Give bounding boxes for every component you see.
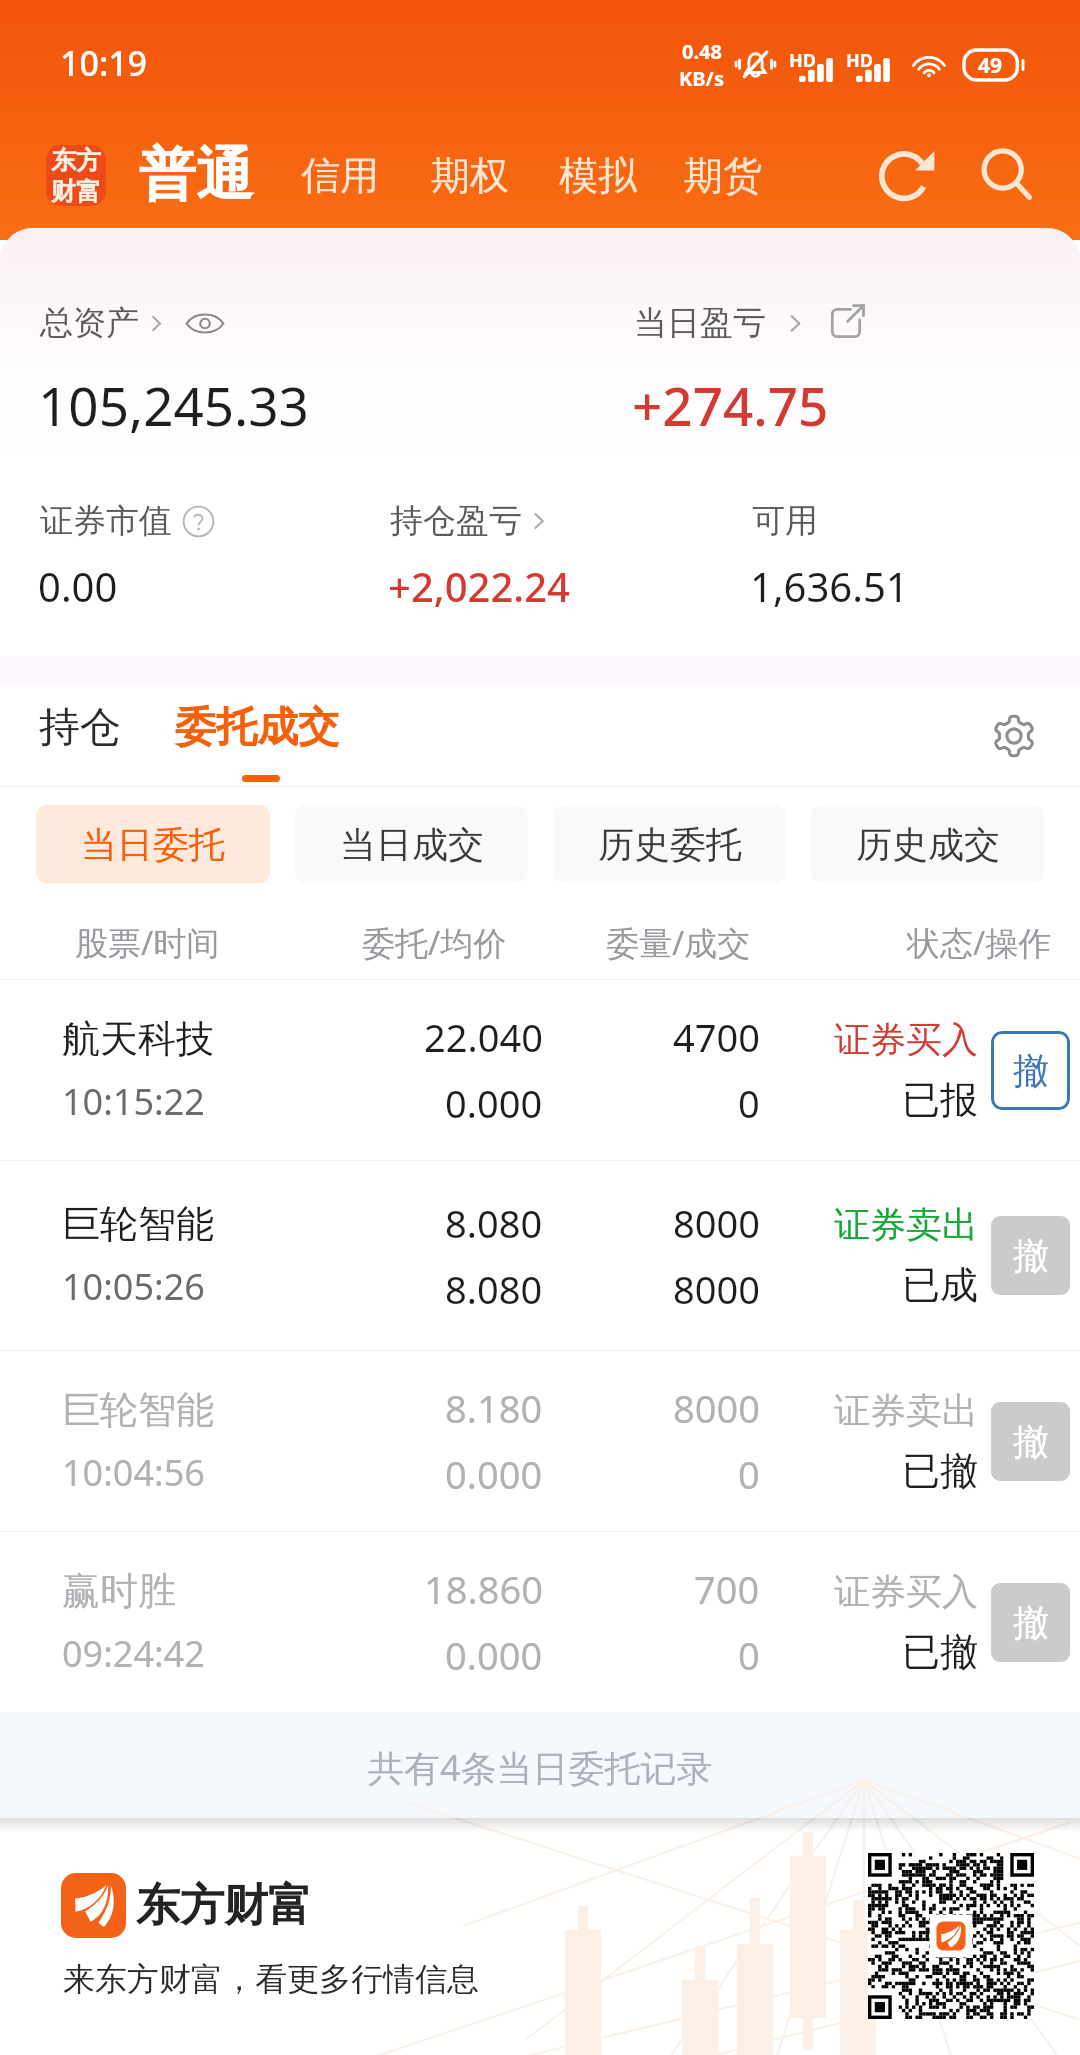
staticText: 10:19 bbox=[60, 40, 148, 86]
staticText: HD bbox=[846, 48, 873, 73]
button[interactable]: 期权 bbox=[431, 151, 509, 200]
staticText: 4700 bbox=[673, 1011, 760, 1063]
staticText: 证券卖出 bbox=[834, 1202, 978, 1247]
staticText: 已撤 bbox=[902, 1447, 978, 1495]
button[interactable]: 模拟 bbox=[559, 151, 637, 200]
staticText: 历史成交 bbox=[856, 822, 1000, 867]
staticText: 委托成交 bbox=[175, 702, 339, 754]
staticText: 撤 bbox=[1013, 1419, 1049, 1464]
button[interactable]: 持仓 bbox=[39, 702, 121, 754]
button[interactable]: 信用 bbox=[301, 151, 379, 200]
staticText: 8000 bbox=[673, 1197, 760, 1249]
button[interactable]: 巨轮智能 bbox=[0, 1161, 1080, 1350]
staticText: 已报 bbox=[902, 1076, 978, 1124]
staticText: 巨轮智能 bbox=[62, 1386, 214, 1434]
button[interactable]: 当日盈亏 bbox=[634, 302, 865, 344]
staticText: HD bbox=[789, 48, 816, 73]
button[interactable]: 当日委托 bbox=[36, 805, 270, 883]
button[interactable]: Refresh bbox=[870, 138, 944, 212]
staticText: 0 bbox=[738, 1448, 760, 1500]
staticText: 赢时胜 bbox=[62, 1567, 176, 1615]
staticText: 巨轮智能 bbox=[62, 1200, 214, 1248]
staticText: 证券市值 bbox=[40, 500, 172, 542]
staticText: 0 bbox=[738, 1629, 760, 1681]
staticText: 8000 bbox=[673, 1263, 760, 1315]
staticText: 来东方财富，看更多行情信息 bbox=[63, 1959, 479, 1999]
staticText: 1,636.51 bbox=[750, 559, 909, 613]
staticText: 总资产 bbox=[40, 302, 139, 344]
staticText: 委量/成交 bbox=[606, 920, 751, 965]
button[interactable]: 航天科技 bbox=[0, 980, 1080, 1160]
staticText: 已撤 bbox=[902, 1628, 978, 1676]
staticText: 0.000 bbox=[445, 1448, 543, 1500]
staticText: 8.080 bbox=[445, 1263, 543, 1315]
staticText: 0.000 bbox=[445, 1077, 543, 1129]
staticText: 10:04:56 bbox=[62, 1448, 205, 1497]
staticText: 8.080 bbox=[445, 1197, 543, 1249]
staticText: 东方财富 bbox=[136, 1878, 312, 1933]
staticText: +2,022.24 bbox=[388, 559, 570, 613]
button[interactable]: 历史成交 bbox=[811, 805, 1044, 883]
button[interactable]: 总资产 bbox=[40, 302, 225, 344]
staticText: 当日盈亏 bbox=[634, 302, 766, 344]
staticText: 09:24:42 bbox=[62, 1629, 205, 1678]
staticText: 22.040 bbox=[424, 1011, 543, 1063]
button[interactable]: 普通 bbox=[139, 139, 253, 211]
staticText: 历史委托 bbox=[598, 822, 742, 867]
staticText: 航天科技 bbox=[62, 1015, 214, 1063]
staticText: 证券买入 bbox=[834, 1017, 978, 1062]
button[interactable]: 委托成交 bbox=[175, 702, 339, 754]
button[interactable]: Search bbox=[970, 138, 1044, 212]
staticText: 撤 bbox=[1013, 1600, 1049, 1645]
button[interactable]: 撤 bbox=[991, 1216, 1070, 1295]
staticText: 105,245.33 bbox=[38, 369, 309, 441]
staticText: 0.00 bbox=[38, 559, 118, 613]
staticText: 可用 bbox=[752, 500, 818, 542]
staticText: 0.000 bbox=[445, 1629, 543, 1681]
staticText: 撤 bbox=[1013, 1048, 1049, 1093]
button[interactable]: 撤 bbox=[991, 1402, 1070, 1481]
staticText: 0.48 bbox=[682, 38, 722, 65]
staticText: 证券买入 bbox=[834, 1569, 978, 1614]
button[interactable]: 当日成交 bbox=[295, 805, 528, 883]
button[interactable]: 期货 bbox=[684, 151, 762, 200]
staticText: 状态/操作 bbox=[907, 920, 1052, 965]
staticText: 当日委托 bbox=[81, 822, 225, 867]
staticText: 委托/均价 bbox=[362, 920, 507, 965]
button[interactable]: 撤 bbox=[991, 1583, 1070, 1662]
button[interactable]: 撤 bbox=[991, 1031, 1070, 1110]
staticText: 股票/时间 bbox=[75, 920, 220, 965]
staticText: 10:15:22 bbox=[62, 1077, 205, 1126]
staticText: 当日成交 bbox=[340, 822, 484, 867]
button[interactable]: 巨轮智能 bbox=[0, 1351, 1080, 1531]
button[interactable]: 历史委托 bbox=[553, 805, 786, 883]
staticText: 持仓盈亏 bbox=[390, 500, 522, 542]
staticText: 撤 bbox=[1013, 1233, 1049, 1278]
staticText: 东方 bbox=[51, 145, 101, 176]
staticText: 8.180 bbox=[445, 1382, 543, 1434]
staticText: KB/s bbox=[679, 65, 724, 92]
button[interactable]: 赢时胜 bbox=[0, 1532, 1080, 1712]
staticText: 已成 bbox=[902, 1261, 978, 1309]
staticText: 财富 bbox=[51, 176, 101, 206]
staticText: 持仓 bbox=[39, 702, 121, 754]
staticText: 10:05:26 bbox=[62, 1262, 205, 1311]
button[interactable]: 持仓盈亏 bbox=[390, 500, 554, 542]
staticText: 0 bbox=[738, 1077, 760, 1129]
staticText: 700 bbox=[694, 1563, 760, 1615]
staticText: +274.75 bbox=[632, 369, 829, 441]
staticText: 证券卖出 bbox=[834, 1388, 978, 1433]
staticText: 18.860 bbox=[424, 1563, 543, 1615]
staticText: 49 bbox=[978, 51, 1003, 80]
button[interactable]: Settings bbox=[980, 702, 1048, 770]
staticText: 8000 bbox=[673, 1382, 760, 1434]
staticText: 共有4条当日委托记录 bbox=[368, 1743, 713, 1792]
